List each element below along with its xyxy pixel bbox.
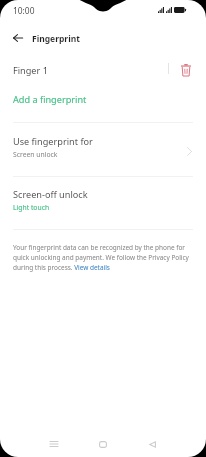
- button[interactable]: Add a fingerprint: [0, 87, 206, 111]
- staticText: Screen unlock: [13, 150, 58, 159]
- button[interactable]: Back: [0, 28, 80, 50]
- button[interactable]: Screen-off unlock: [0, 179, 206, 221]
- staticText: Fingerprint: [32, 33, 80, 45]
- staticText: Add a fingerprint: [13, 93, 87, 105]
- staticText: Finger 1: [13, 64, 48, 76]
- staticText: Screen-off unlock: [13, 188, 88, 200]
- button[interactable]: Finger 1: [0, 56, 206, 84]
- button[interactable]: Delete fingerprint: [178, 56, 194, 84]
- button[interactable]: Back: [136, 428, 168, 457]
- staticText: Light touch: [13, 203, 50, 212]
- staticText: Your fingerprint data can be recognized …: [13, 243, 194, 272]
- button[interactable]: Recents: [38, 428, 70, 457]
- staticText: Use fingerprint for: [13, 135, 93, 147]
- button[interactable]: Home: [87, 428, 119, 457]
- staticText: 10:00: [13, 5, 35, 16]
- button[interactable]: Use fingerprint for: [0, 126, 206, 168]
